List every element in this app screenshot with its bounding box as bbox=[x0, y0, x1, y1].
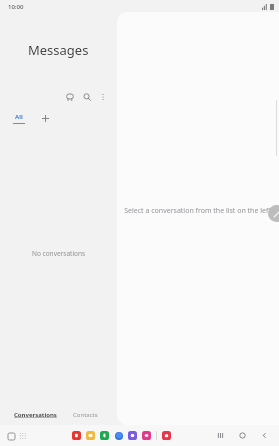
staticText: Messages bbox=[28, 41, 89, 59]
button[interactable]: Back bbox=[258, 429, 271, 442]
staticText: Select a conversation from the list on t… bbox=[124, 206, 273, 216]
button[interactable]: Recent apps bbox=[214, 429, 227, 442]
button[interactable]: Add tab bbox=[38, 111, 52, 125]
button[interactable]: Files app bbox=[85, 430, 96, 441]
button[interactable]: Chat bubble bbox=[63, 90, 77, 104]
button[interactable]: Photo app bbox=[71, 430, 82, 441]
button[interactable]: Assistant app bbox=[127, 430, 138, 441]
staticText: 10:00 bbox=[8, 3, 24, 11]
button[interactable]: More options bbox=[96, 90, 110, 104]
staticText: No conversations bbox=[32, 249, 86, 258]
button[interactable]: Shopping app bbox=[161, 430, 172, 441]
button[interactable]: Compose new message bbox=[268, 205, 279, 222]
button[interactable]: Home bbox=[236, 429, 249, 442]
button[interactable]: Phone app bbox=[99, 430, 110, 441]
staticText: Conversations bbox=[14, 411, 57, 419]
button[interactable]: Search bbox=[80, 90, 94, 104]
button[interactable]: Messages app bbox=[113, 430, 124, 441]
button[interactable]: All bbox=[10, 113, 28, 124]
staticText: Contacts bbox=[73, 411, 98, 419]
button[interactable]: Taskbar apps bbox=[5, 430, 17, 442]
button[interactable]: Camera app bbox=[141, 430, 152, 441]
button[interactable]: Contacts bbox=[73, 411, 98, 419]
staticText: All bbox=[15, 113, 23, 121]
button[interactable]: Conversations bbox=[14, 411, 57, 419]
button[interactable]: All apps bbox=[17, 430, 29, 442]
